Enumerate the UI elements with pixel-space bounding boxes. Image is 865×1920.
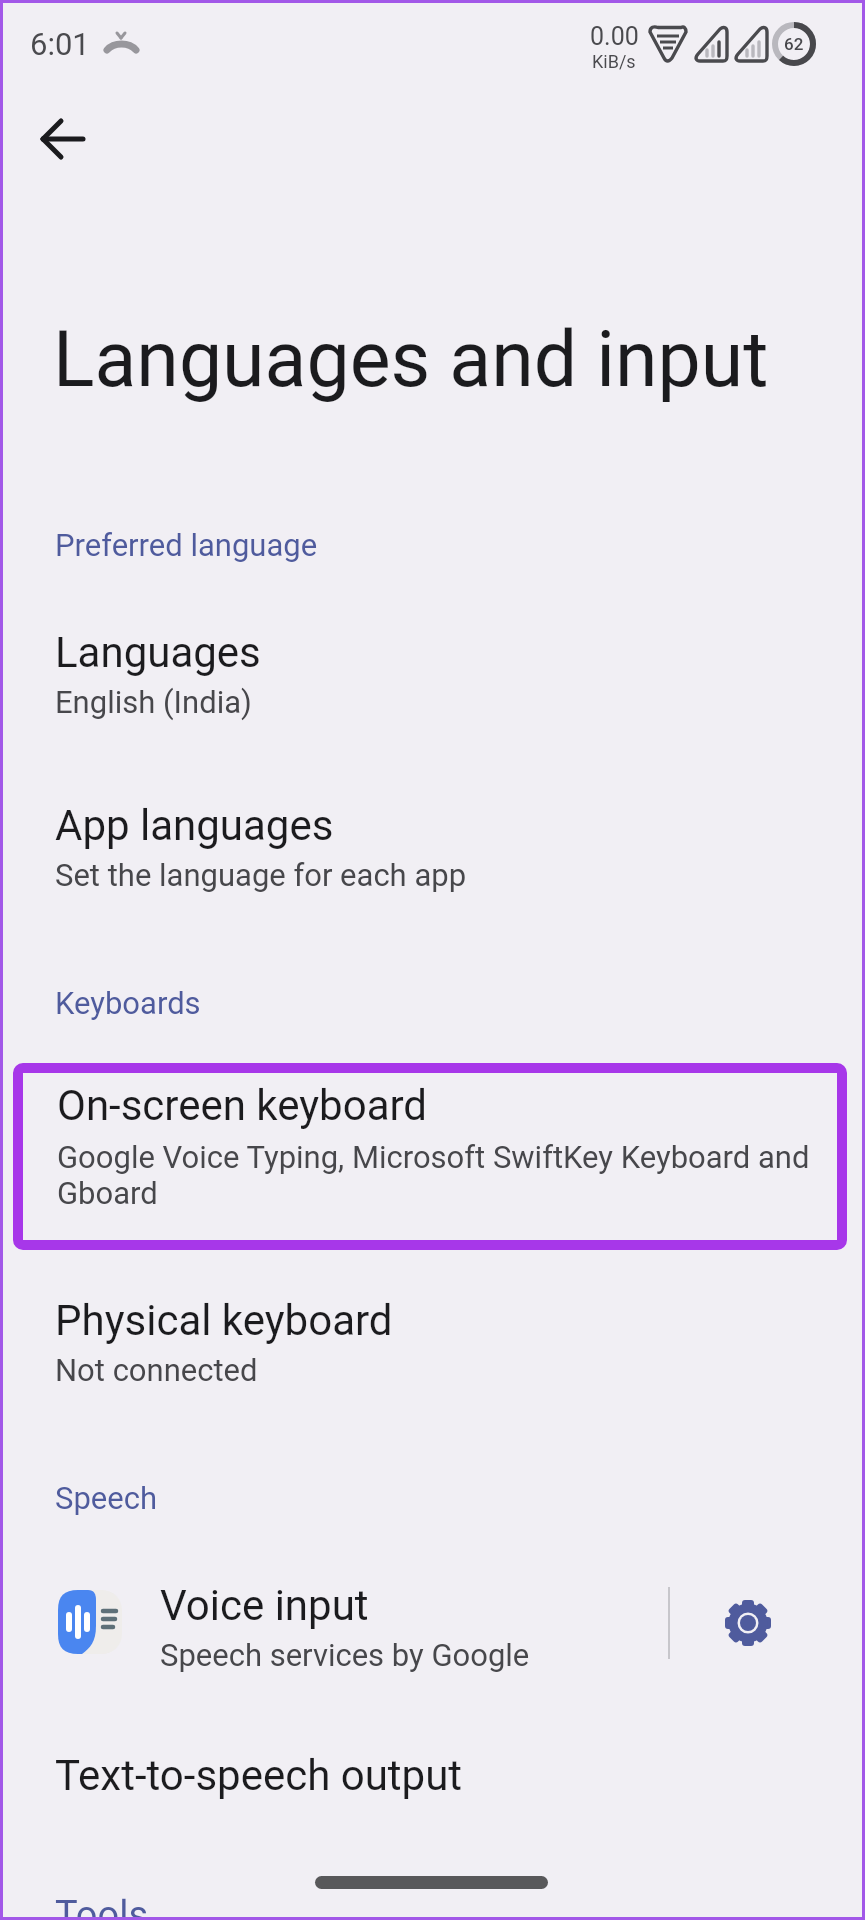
staticText: App languages [55, 801, 334, 850]
staticText: Preferred language [55, 527, 318, 563]
staticText: KiB/s [592, 51, 636, 72]
button[interactable]: Text-to-speech output [0, 1738, 865, 1818]
staticText: Physical keyboard [55, 1296, 393, 1345]
staticText: English (India) [55, 684, 252, 720]
staticText: Speech [55, 1480, 157, 1516]
staticText: Voice input [160, 1581, 369, 1630]
staticText: Languages and input [53, 315, 769, 405]
staticText: Google Voice Typing, Microsoft SwiftKey … [57, 1139, 810, 1212]
button[interactable]: Voice input [0, 1570, 660, 1675]
button[interactable]: On-screen keyboard [13, 1063, 847, 1250]
staticText: Speech services by Google [160, 1637, 530, 1673]
staticText: 0.00 [590, 22, 639, 51]
button[interactable] [30, 106, 96, 172]
staticText: Tools [55, 1893, 149, 1920]
staticText: On-screen keyboard [57, 1081, 428, 1130]
staticText: Keyboards [55, 985, 201, 1021]
staticText: Set the language for each app [55, 857, 467, 893]
staticText: Languages [55, 628, 261, 677]
staticText: Not connected [55, 1352, 258, 1388]
button[interactable] [714, 1589, 782, 1657]
staticText: Text-to-speech output [55, 1751, 463, 1800]
staticText: 6:01 [30, 26, 90, 62]
button[interactable]: App languages [0, 788, 865, 837]
button[interactable]: Languages [0, 615, 865, 664]
button[interactable]: Physical keyboard [0, 1283, 865, 1332]
staticText: 62 [784, 34, 804, 54]
